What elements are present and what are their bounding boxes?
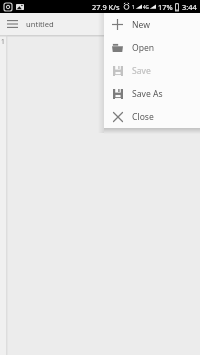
staticText: Close bbox=[132, 111, 154, 123]
staticText: 1 bbox=[1, 37, 5, 46]
button[interactable]: Open bbox=[104, 36, 200, 59]
button[interactable]: Save bbox=[104, 59, 200, 82]
staticText: Save As bbox=[132, 88, 163, 100]
button[interactable]: Navigation menu bbox=[0, 13, 25, 35]
staticText: 3:44 bbox=[182, 2, 197, 12]
staticText: 17% bbox=[158, 2, 173, 12]
staticText: New bbox=[132, 19, 150, 31]
button[interactable]: Save As bbox=[104, 82, 200, 105]
staticText: 4G bbox=[143, 4, 149, 10]
staticText: 1 bbox=[132, 4, 135, 10]
button[interactable]: Close bbox=[104, 105, 200, 128]
staticText: untitled bbox=[26, 19, 54, 29]
staticText: Open bbox=[132, 42, 155, 54]
button[interactable]: New bbox=[104, 13, 200, 36]
staticText: 27.9 K/s bbox=[92, 2, 120, 12]
staticText: Save bbox=[132, 65, 151, 77]
